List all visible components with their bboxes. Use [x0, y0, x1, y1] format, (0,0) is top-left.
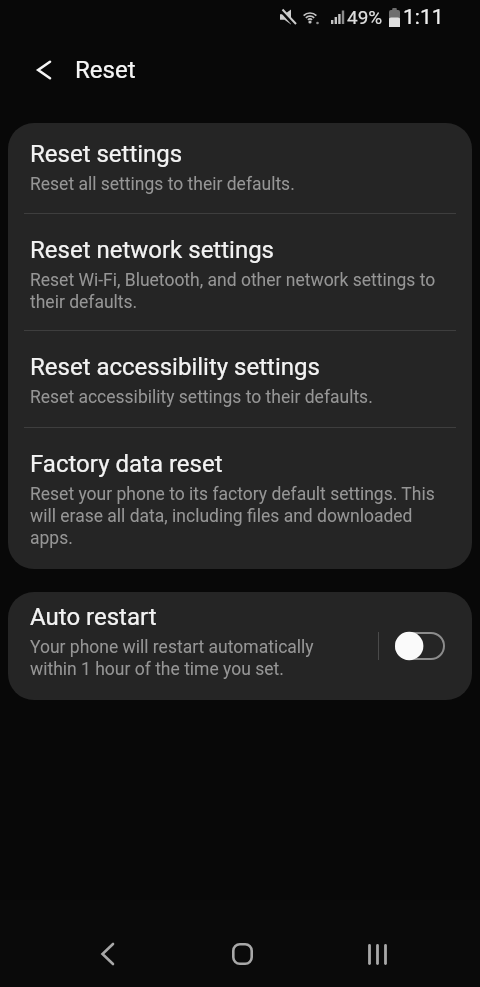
staticText: Your phone will restart automatically wi…: [30, 637, 314, 680]
button[interactable]: Auto restart: [8, 592, 472, 700]
staticText: Reset Wi-Fi, Bluetooth, and other networ…: [30, 270, 436, 313]
button[interactable]: Reset settings: [8, 123, 472, 213]
staticText: Reset all settings to their defaults.: [30, 174, 295, 195]
staticText: Reset network settings: [30, 236, 275, 264]
button[interactable]: Reset accessibility settings: [8, 331, 472, 427]
button[interactable]: [357, 934, 397, 974]
staticText: Auto restart: [30, 603, 157, 631]
staticText: 49%: [347, 6, 383, 28]
button[interactable]: [30, 46, 58, 94]
button[interactable]: [222, 934, 262, 974]
staticText: Reset settings: [30, 140, 183, 168]
staticText: Factory data reset: [30, 450, 223, 478]
staticText: Reset: [75, 56, 136, 84]
staticText: Reset your phone to its factory default …: [30, 484, 435, 549]
button[interactable]: [395, 631, 445, 661]
staticText: 1:11: [403, 5, 444, 30]
button[interactable]: [87, 934, 127, 974]
button[interactable]: Factory data reset: [8, 428, 472, 569]
staticText: Reset accessibility settings to their de…: [30, 387, 373, 408]
button[interactable]: Reset network settings: [8, 214, 472, 330]
staticText: Reset accessibility settings: [30, 353, 320, 381]
